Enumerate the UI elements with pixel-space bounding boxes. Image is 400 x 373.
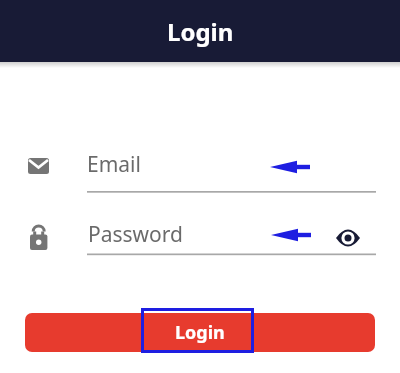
button[interactable]: Login: [25, 313, 375, 352]
staticText: Password: [88, 220, 183, 249]
button[interactable]: Password: [84, 218, 376, 256]
button[interactable]: [330, 222, 366, 254]
staticText: Login: [167, 15, 234, 48]
staticText: Email: [87, 150, 141, 179]
button[interactable]: Email: [84, 148, 376, 193]
staticText: Login: [175, 320, 225, 345]
